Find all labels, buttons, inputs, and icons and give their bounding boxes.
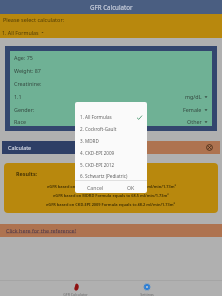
staticText: OK xyxy=(127,184,135,191)
staticText: GFR Calculator xyxy=(63,292,88,296)
staticText: eGFR based on MDRD Formula equals to 68.… xyxy=(53,193,169,198)
button[interactable]: Settings xyxy=(111,281,182,296)
button[interactable]: Calculate xyxy=(2,141,109,154)
staticText: 1.1 xyxy=(14,93,22,100)
button[interactable]: 5. CKD-EPI 2012 xyxy=(75,159,147,171)
staticText: Cancel xyxy=(87,184,104,191)
staticText: 4. CKD-EPI 2009 xyxy=(80,150,115,156)
staticText: 2. Cockroft-Gault xyxy=(80,126,117,132)
button[interactable]: 2. Cockroft-Gault xyxy=(75,123,147,135)
staticText: mg/dL xyxy=(185,93,202,100)
button[interactable]: GFR Calculator xyxy=(40,281,111,296)
staticText: Other xyxy=(187,118,202,125)
button[interactable]: Age: 75 xyxy=(10,51,212,64)
staticText: Please select calculator: xyxy=(3,16,65,23)
button[interactable]: 1. All Formulas xyxy=(1,28,45,37)
staticText: 5. CKD-EPI 2012 xyxy=(80,162,115,168)
button[interactable]: Creatinine: xyxy=(10,77,212,90)
staticText: Calculate xyxy=(8,144,32,151)
staticText: Click here for the reference! xyxy=(6,227,77,234)
staticText: Creatinine: xyxy=(14,80,42,87)
staticText: eGFR based on Cockroft-Gault Formula equ… xyxy=(47,184,176,189)
staticText: Results: xyxy=(16,170,38,177)
button[interactable]: Clear xyxy=(112,141,220,154)
staticText: 1. All Formulas xyxy=(80,114,112,120)
staticText: GFR Calculator xyxy=(90,3,133,11)
button[interactable]: Gender: xyxy=(10,103,212,116)
button[interactable]: 3. MDRD xyxy=(75,135,147,147)
staticText: 3. MDRD xyxy=(80,138,99,144)
button[interactable]: 6. Schwartz (Pediatric) xyxy=(75,171,147,180)
staticText: eGFR based on CKD-EPI 2009 Formula equal… xyxy=(46,202,176,207)
button[interactable]: Cancel xyxy=(82,182,109,193)
button[interactable]: 4. CKD-EPI 2009 xyxy=(75,147,147,159)
button[interactable]: OK xyxy=(122,182,140,193)
button[interactable]: Click here for the reference! xyxy=(0,224,222,237)
staticText: Race xyxy=(14,118,27,125)
button[interactable]: Weight: 87 xyxy=(10,64,212,77)
staticText: Gender: xyxy=(14,106,35,113)
staticText: Age: 75 xyxy=(14,54,33,61)
button[interactable]: Race xyxy=(10,116,212,126)
staticText: Settings xyxy=(140,292,154,296)
staticText: Weight: 87 xyxy=(14,67,41,74)
button[interactable]: 1. All Formulas xyxy=(75,111,147,123)
button[interactable]: 1.1 xyxy=(10,90,212,103)
staticText: 6. Schwartz (Pediatric) xyxy=(80,173,128,179)
staticText: 1. All Formulas xyxy=(2,29,39,36)
staticText: Female xyxy=(183,106,202,113)
